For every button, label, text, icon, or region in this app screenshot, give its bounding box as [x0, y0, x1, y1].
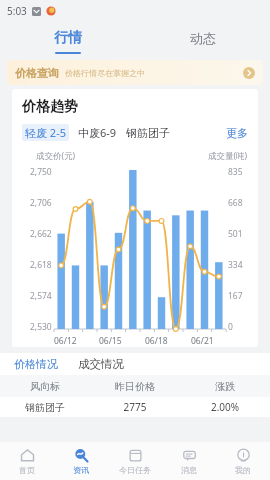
staticText: 消息	[181, 465, 197, 475]
button[interactable]: 中废6-9	[78, 124, 117, 141]
staticText: 668	[228, 197, 243, 209]
button[interactable]: 钢筋团子	[126, 125, 170, 141]
staticText: 钢筋团子	[0, 401, 90, 414]
staticText: 06/18	[145, 335, 168, 347]
staticText: 更多	[226, 126, 248, 140]
staticText: 06/15	[99, 335, 122, 347]
button[interactable]: 我的	[216, 442, 270, 480]
staticText: 2,530	[30, 321, 52, 333]
button[interactable]: 动态	[135, 22, 270, 60]
staticText: 334	[228, 259, 243, 271]
staticText: 06/12	[54, 335, 77, 347]
staticText: 首页	[19, 465, 35, 475]
staticText: 价格行情尽在掌握之中	[65, 68, 145, 78]
button[interactable]: 轻废 2-5	[22, 124, 69, 141]
staticText: 835	[228, 166, 243, 178]
staticText: 2,618	[30, 259, 52, 271]
button[interactable]: 消息	[162, 442, 216, 480]
button[interactable]: 更多	[224, 125, 250, 141]
button[interactable]: 今日任务	[108, 442, 162, 480]
staticText: 今日任务	[119, 465, 151, 475]
staticText: 5:03	[7, 4, 27, 18]
staticText: 轻废 2-5	[25, 125, 66, 140]
staticText: 2.00%	[180, 400, 270, 414]
staticText: 0	[228, 321, 233, 333]
staticText: 动态	[190, 30, 216, 46]
staticText: 价格查询	[15, 66, 59, 80]
staticText: 中废6-9	[78, 125, 117, 140]
staticText: 我的	[235, 465, 251, 475]
staticText: 资讯	[73, 465, 89, 475]
staticText: 昨日价格	[90, 380, 180, 393]
button[interactable]: 首页	[0, 442, 54, 480]
staticText: 2775	[90, 400, 180, 414]
staticText: 2,706	[30, 197, 52, 209]
staticText: 风向标	[0, 380, 90, 393]
staticText: 涨跌	[180, 380, 270, 393]
staticText: 2,750	[30, 166, 52, 178]
staticText: 2,662	[30, 228, 52, 240]
staticText: 成交价(元)	[36, 150, 76, 162]
staticText: 价格情况	[14, 357, 58, 371]
button[interactable]: 行情	[0, 22, 135, 60]
staticText: 167	[228, 290, 243, 302]
staticText: 成交情况	[78, 357, 124, 371]
staticText: 价格趋势	[22, 98, 78, 116]
button[interactable]: 价格情况	[12, 357, 60, 371]
staticText: 2,574	[30, 290, 52, 302]
button[interactable]: 成交情况	[76, 357, 126, 371]
staticText: 钢筋团子	[126, 126, 170, 140]
staticText: 行情	[54, 29, 82, 47]
other: 进入价格查询	[243, 67, 255, 79]
button[interactable]: 价格查询	[7, 60, 263, 85]
staticText: 06/21	[191, 335, 214, 347]
staticText: 成交量(吨)	[208, 150, 248, 162]
button[interactable]: 资讯	[54, 442, 108, 480]
staticText: 501	[228, 228, 243, 240]
